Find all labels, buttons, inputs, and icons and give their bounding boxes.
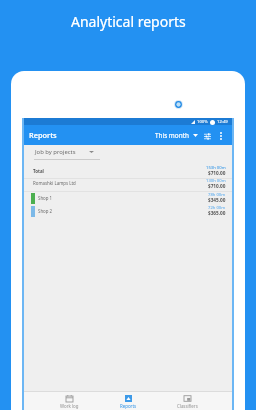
staticText: $710.00 (208, 170, 226, 176)
staticText: Job by projects (35, 148, 76, 156)
button[interactable]: Romashki Lamps Ltd (24, 179, 232, 191)
button[interactable]: Work log (40, 392, 99, 410)
staticText: 72h 00m (208, 205, 226, 211)
button[interactable]: Shop 1 (24, 192, 232, 205)
button[interactable]: More options (215, 130, 227, 142)
button[interactable]: Shop 2 (24, 205, 232, 218)
staticText: Work log (60, 403, 79, 409)
staticText: Classifiers (177, 403, 198, 409)
staticText: $710.00 (208, 183, 226, 189)
staticText: Analytical reports (71, 12, 186, 31)
button[interactable]: Total (24, 161, 232, 178)
button[interactable]: Reports (99, 392, 158, 410)
staticText: Total (33, 168, 44, 174)
staticText: 100% (197, 119, 208, 125)
button[interactable]: Job by projects (34, 146, 100, 160)
staticText: Shop 1 (38, 195, 53, 201)
staticText: $345.00 (208, 197, 226, 203)
staticText: Shop 2 (38, 208, 53, 214)
staticText: Reports (120, 403, 137, 409)
staticText: 78h 00m (208, 192, 226, 198)
staticText: Romashki Lamps Ltd (33, 180, 76, 186)
button[interactable]: Classifiers (158, 392, 217, 410)
staticText: This month (155, 131, 189, 140)
button[interactable]: This month (153, 129, 200, 142)
staticText: Reports (29, 130, 57, 140)
staticText: 153h 00m (206, 165, 226, 171)
staticText: 12:49 (217, 119, 228, 125)
button[interactable]: Sort (201, 130, 213, 142)
staticText: $365.00 (208, 210, 226, 216)
staticText: 130h 00m (206, 178, 226, 184)
